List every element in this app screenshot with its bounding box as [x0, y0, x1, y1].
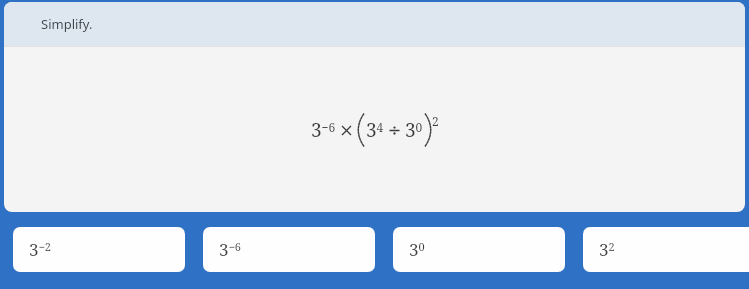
staticText: Simplify. — [41, 15, 93, 33]
button[interactable]: 32 — [583, 227, 749, 272]
staticText: 2 — [432, 113, 439, 129]
staticText: 3−6 — [311, 117, 336, 143]
staticText: 3−2 — [29, 238, 52, 261]
staticText: 3−6 — [219, 238, 242, 261]
staticText: 34 — [366, 117, 384, 143]
staticText: 30 — [405, 117, 423, 143]
staticText: 30 — [409, 238, 425, 261]
staticText: 32 — [599, 238, 615, 261]
button[interactable]: 3−2 — [13, 227, 185, 272]
button[interactable]: 30 — [393, 227, 565, 272]
button[interactable]: 3−6 — [203, 227, 375, 272]
